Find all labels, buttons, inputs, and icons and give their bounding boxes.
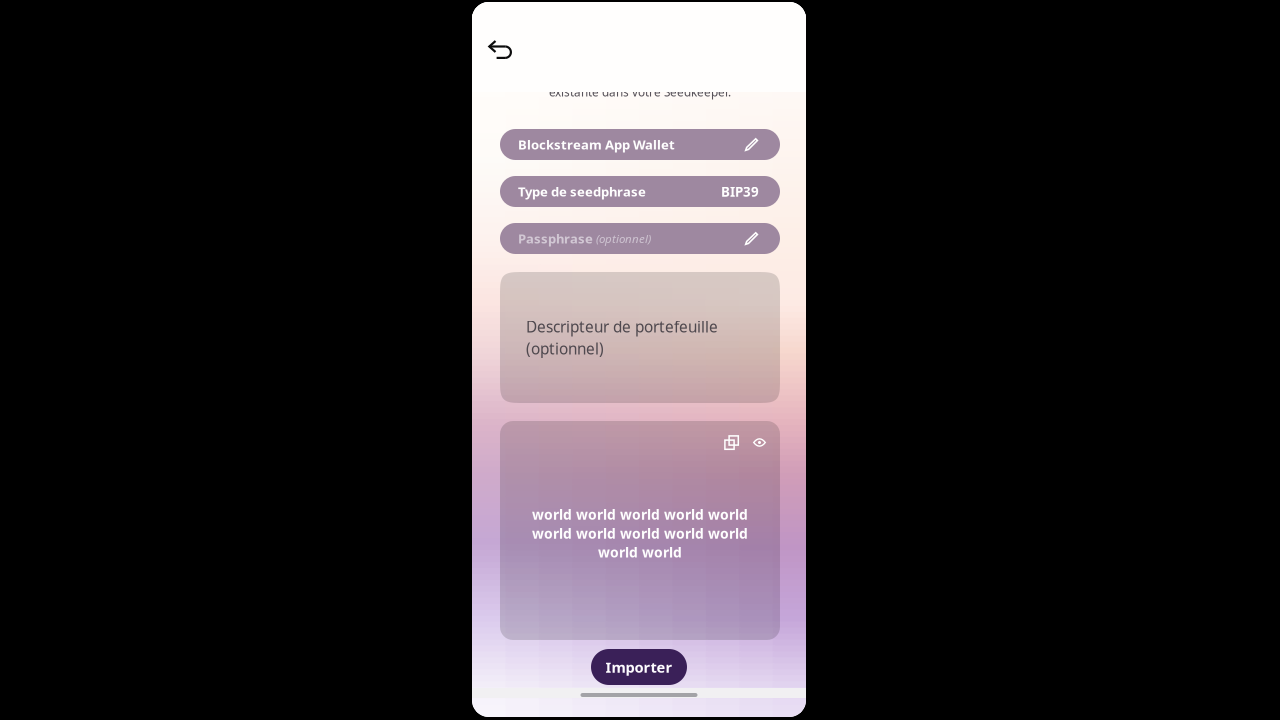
staticText: world world world world world <box>532 524 748 543</box>
staticText: Passphrase <box>518 230 593 247</box>
staticText: Importer <box>605 657 672 677</box>
staticText: (optionnel) <box>593 231 651 246</box>
button[interactable]: Blockstream App Wallet <box>500 129 780 160</box>
button[interactable]: Passphrase <box>500 223 780 254</box>
button[interactable]: Descripteur de portefeuille <box>500 272 780 403</box>
staticText: BIP39 <box>721 182 759 201</box>
staticText: Blockstream App Wallet <box>518 136 675 153</box>
button[interactable]: Importer <box>591 649 687 685</box>
staticText: Descripteur de portefeuille <box>526 316 718 337</box>
button[interactable]: Retour <box>488 41 528 81</box>
staticText: (optionnel) <box>526 338 604 359</box>
staticText: world world world world world <box>532 505 748 524</box>
button[interactable]: Type de seedphrase <box>500 176 780 207</box>
staticText: world world <box>598 543 682 562</box>
button[interactable]: Copier <box>724 435 739 450</box>
button[interactable]: Afficher <box>753 435 766 450</box>
staticText: Type de seedphrase <box>518 183 646 200</box>
staticText: existante dans votre Seedkeeper. <box>549 84 731 100</box>
